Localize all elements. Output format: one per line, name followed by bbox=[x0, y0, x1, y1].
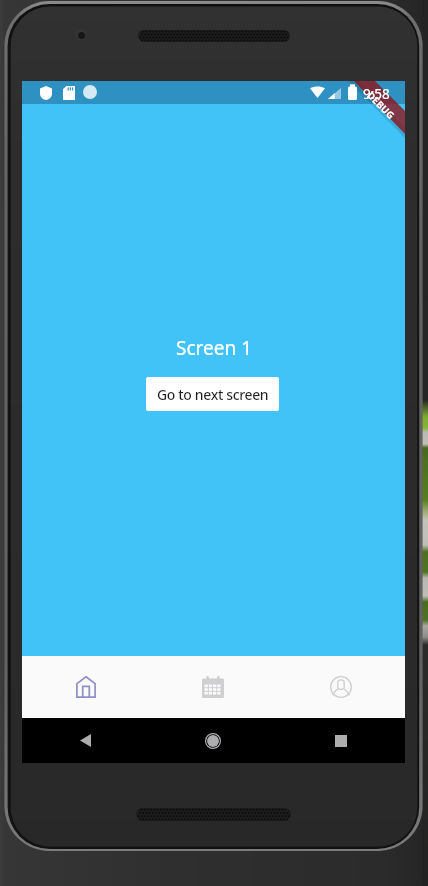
button[interactable]: Profile bbox=[277, 656, 405, 718]
staticText: Go to next screen bbox=[157, 385, 269, 404]
button[interactable]: Home bbox=[22, 656, 149, 718]
button[interactable]: Go to next screen bbox=[146, 377, 279, 411]
button[interactable]: Recents bbox=[277, 718, 405, 763]
button[interactable]: Back bbox=[22, 718, 149, 763]
staticText: Screen 1 bbox=[176, 335, 253, 361]
button[interactable]: Home bbox=[149, 718, 277, 763]
staticText: 9:58 bbox=[363, 85, 390, 103]
staticText: DEBUG bbox=[364, 89, 398, 122]
button[interactable]: Calendar bbox=[149, 656, 277, 718]
